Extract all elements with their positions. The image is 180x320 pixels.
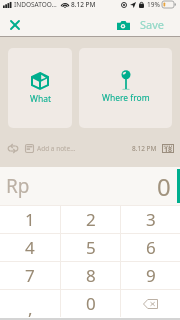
button[interactable]: 8 — [61, 262, 120, 289]
staticText: Add a note... — [37, 144, 76, 153]
staticText: What — [30, 93, 51, 105]
button[interactable]: What — [8, 48, 72, 128]
staticText: 4 — [25, 236, 35, 259]
staticText: 3 — [146, 208, 156, 231]
staticText: 6 — [146, 236, 156, 259]
staticText: Rp — [6, 173, 30, 199]
button[interactable]: 1 — [0, 206, 60, 233]
button[interactable]: 3 — [121, 206, 180, 233]
staticText: 7 — [25, 264, 35, 287]
staticText: 1 — [25, 208, 35, 231]
staticText: 8 — [86, 264, 96, 287]
button[interactable]: 0 — [61, 290, 120, 317]
staticText: , — [28, 297, 33, 320]
staticText: 8.12 PM — [71, 0, 96, 9]
button[interactable]: Where from — [79, 48, 172, 128]
staticText: 9 — [146, 264, 156, 287]
button[interactable]: Add a note... — [25, 144, 132, 153]
staticText: Save — [140, 17, 165, 32]
button[interactable]: Save — [138, 13, 180, 36]
button[interactable]: 9 — [121, 262, 180, 289]
staticText: 8.12 PM — [132, 144, 157, 153]
button[interactable]: Date — [161, 141, 175, 155]
staticText: 2 — [86, 208, 96, 231]
button[interactable]: , — [0, 290, 60, 317]
button[interactable]: 2 — [61, 206, 120, 233]
staticText: 18 — [164, 145, 173, 155]
button[interactable]: 6 — [121, 234, 180, 261]
button[interactable]: Repeat — [6, 141, 20, 155]
button[interactable]: 7 — [0, 262, 60, 289]
staticText: 0 — [157, 170, 171, 203]
staticText: INDOSATOO... — [14, 0, 57, 9]
button[interactable]: Attach photo — [113, 15, 133, 35]
staticText: 19% — [147, 0, 160, 9]
button[interactable]: Backspace — [121, 290, 180, 317]
button[interactable]: 4 — [0, 234, 60, 261]
button[interactable]: Close — [5, 15, 25, 35]
staticText: 0 — [86, 292, 96, 315]
button[interactable]: 5 — [61, 234, 120, 261]
staticText: Where from — [102, 92, 150, 104]
staticText: 5 — [86, 236, 96, 259]
